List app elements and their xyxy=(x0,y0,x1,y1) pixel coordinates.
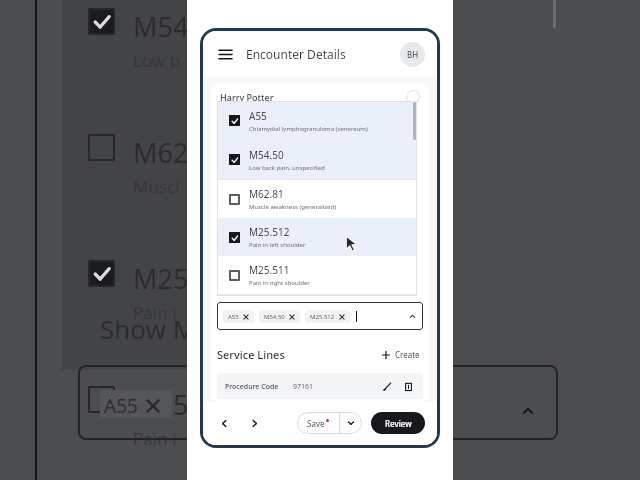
button[interactable]: M54.50 xyxy=(217,140,417,179)
button[interactable]: A55 xyxy=(223,310,254,323)
button[interactable]: M25.512 xyxy=(217,218,417,256)
staticText: M54.50 xyxy=(264,313,285,321)
staticText: Service Lines xyxy=(217,347,285,362)
staticText: Create xyxy=(395,349,420,360)
staticText: Show Mo xyxy=(100,311,213,346)
staticText: Chlamydial lymphogranuloma (venereum) xyxy=(249,125,368,133)
staticText: A55 xyxy=(104,393,138,419)
staticText: Harry Potter xyxy=(220,91,274,103)
button[interactable]: Save options xyxy=(340,412,362,434)
staticText: Review xyxy=(385,418,412,429)
button[interactable]: Save xyxy=(297,412,339,434)
staticText: M25 xyxy=(133,386,189,423)
button[interactable] xyxy=(229,232,240,243)
staticText: M62.81 xyxy=(249,187,284,201)
staticText: Pain i xyxy=(133,301,177,324)
staticText: Low b xyxy=(133,49,181,72)
staticText: Pain i xyxy=(133,427,177,450)
staticText: A55 xyxy=(249,109,267,123)
button[interactable] xyxy=(229,270,240,281)
button[interactable]: Edit xyxy=(381,380,394,393)
button[interactable]: M25.512 xyxy=(305,310,350,323)
staticText: Encounter Details xyxy=(246,46,346,62)
staticText: 97161 xyxy=(293,382,314,392)
button[interactable]: M25.511 xyxy=(217,256,417,294)
button[interactable]: A55 xyxy=(217,101,417,140)
button[interactable]: Review xyxy=(371,412,425,434)
staticText: BH xyxy=(407,49,419,60)
button[interactable]: Previous xyxy=(215,414,233,432)
button[interactable]: Menu xyxy=(215,44,235,64)
staticText: M25.511 xyxy=(249,263,290,277)
button[interactable] xyxy=(229,194,240,205)
staticText: Procedure Code xyxy=(225,382,279,392)
button[interactable]: More xyxy=(406,90,420,104)
button[interactable]: Delete xyxy=(402,380,415,393)
button[interactable] xyxy=(229,115,240,126)
button[interactable]: Next xyxy=(245,414,263,432)
button[interactable]: Create xyxy=(379,346,423,363)
staticText: M54 xyxy=(133,8,189,45)
staticText: M25.512 xyxy=(310,313,335,321)
button[interactable] xyxy=(229,154,240,165)
button[interactable]: Procedure Code xyxy=(217,373,423,399)
staticText: Save xyxy=(307,418,325,429)
button[interactable]: A55 xyxy=(217,302,423,330)
staticText: Muscl xyxy=(133,175,180,198)
staticText: A55 xyxy=(228,313,239,321)
staticText: Muscle weakness (generalized) xyxy=(249,203,336,211)
button[interactable]: M62.81 xyxy=(217,180,417,218)
staticText: M54.50 xyxy=(249,148,284,162)
staticText: Low back pain, unspecified xyxy=(249,164,325,172)
staticText: Pain in right shoulder xyxy=(249,279,310,287)
staticText: M25 xyxy=(133,260,189,297)
staticText: M25.512 xyxy=(249,225,290,239)
staticText: M62 xyxy=(133,134,189,171)
button[interactable]: M54.50 xyxy=(259,310,300,323)
button[interactable]: Profile BH xyxy=(400,42,425,67)
staticText: Pain in left shoulder xyxy=(249,241,306,249)
